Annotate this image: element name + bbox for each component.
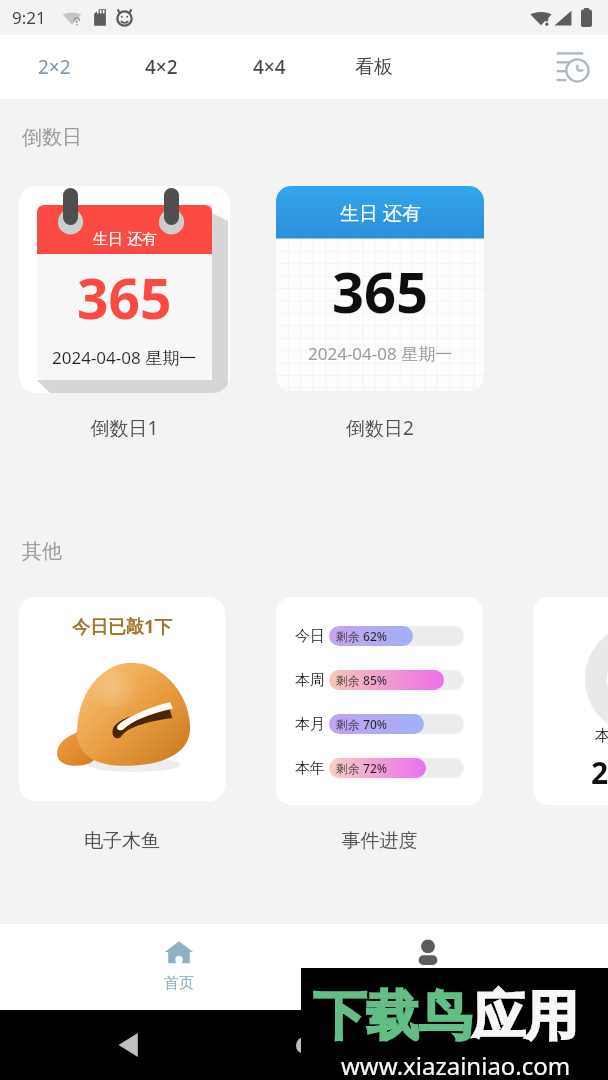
staticText: 生日 还有 xyxy=(93,228,157,248)
staticText: 剩余 70% xyxy=(336,716,388,732)
button[interactable]: 生日 还有 xyxy=(19,186,230,393)
button[interactable]: 4×4 xyxy=(243,35,296,99)
staticText: 倒数日1 xyxy=(19,415,230,441)
staticText: 365 xyxy=(77,260,172,335)
button[interactable]: 我的 xyxy=(380,923,476,1010)
staticText: 今日已敲1下 xyxy=(72,614,173,639)
button[interactable]: 本周 xyxy=(533,597,608,805)
staticText: 下载鸟 xyxy=(313,983,472,1050)
staticText: 电子木鱼 xyxy=(19,829,225,853)
staticText: 剩余 72% xyxy=(336,760,388,776)
staticText: 今日 xyxy=(295,627,325,646)
button[interactable]: Back xyxy=(110,1025,150,1065)
staticText: 看板 xyxy=(355,55,393,79)
staticText: 本周 xyxy=(295,671,325,690)
button[interactable]: 4×2 xyxy=(135,35,188,99)
staticText: www.xiazainiao.com xyxy=(341,1049,571,1080)
button[interactable]: 今日已敲1下 xyxy=(19,597,225,801)
staticText: 生日 还有 xyxy=(340,200,421,226)
staticText: 本周 xyxy=(595,726,608,746)
staticText: 剩余 85% xyxy=(336,672,388,688)
staticText: 首页 xyxy=(164,974,194,993)
staticText: 其他 xyxy=(22,539,62,564)
staticText: 倒数日 xyxy=(22,125,82,150)
staticText: 应用 xyxy=(472,983,578,1050)
button[interactable]: Home xyxy=(284,1025,324,1065)
staticText: 2天 xyxy=(591,752,608,793)
button[interactable]: History xyxy=(550,46,592,88)
staticText: 2×2 xyxy=(38,54,71,80)
staticText: 4×4 xyxy=(253,54,286,80)
staticText: 倒数日2 xyxy=(276,415,484,441)
staticText: 365 xyxy=(332,253,429,329)
staticText: 4×2 xyxy=(145,54,178,80)
staticText: 本年 xyxy=(295,759,325,778)
staticText: 9:21 xyxy=(12,6,46,29)
button[interactable]: 看板 xyxy=(345,35,403,99)
button[interactable]: 2×2 xyxy=(28,35,81,99)
staticText: 本月 xyxy=(295,715,325,734)
button[interactable]: 生日 还有 xyxy=(276,186,484,391)
button[interactable]: 首页 xyxy=(131,923,227,1010)
staticText: 剩余 62% xyxy=(336,628,388,644)
staticText: 事件进度 xyxy=(276,829,483,853)
staticText: 2024-04-08 星期一 xyxy=(52,346,197,369)
staticText: 我的 xyxy=(413,974,443,993)
staticText: 2024-04-08 星期一 xyxy=(308,342,453,365)
button[interactable]: 今日 xyxy=(276,597,483,805)
